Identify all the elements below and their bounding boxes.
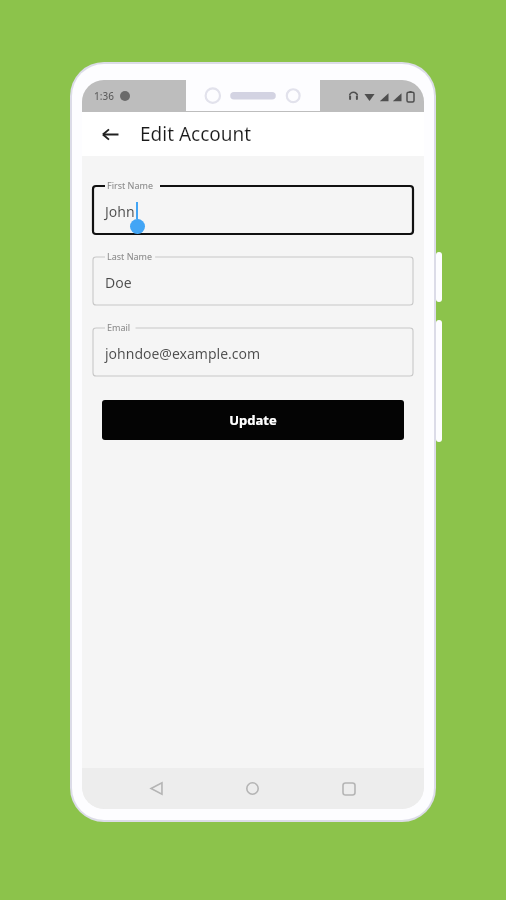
staticText: Edit Account <box>140 121 252 147</box>
button[interactable]: Email <box>93 320 413 376</box>
button[interactable]: First Name <box>93 178 413 234</box>
staticText: Email <box>107 321 131 333</box>
button[interactable]: Last Name <box>93 249 413 305</box>
staticText: Update <box>229 411 277 429</box>
button[interactable]: Home <box>230 768 274 809</box>
staticText: John <box>105 202 135 221</box>
button[interactable]: Back <box>134 768 178 809</box>
button[interactable]: Update <box>102 400 404 440</box>
staticText: First Name <box>107 179 153 191</box>
staticText: Last Name <box>107 250 153 262</box>
staticText: johndoe@example.com <box>105 344 261 363</box>
button[interactable]: Back <box>92 116 128 152</box>
staticText: 1:36 <box>94 89 114 103</box>
staticText: Doe <box>105 273 132 292</box>
button[interactable]: Recent apps <box>327 768 371 809</box>
